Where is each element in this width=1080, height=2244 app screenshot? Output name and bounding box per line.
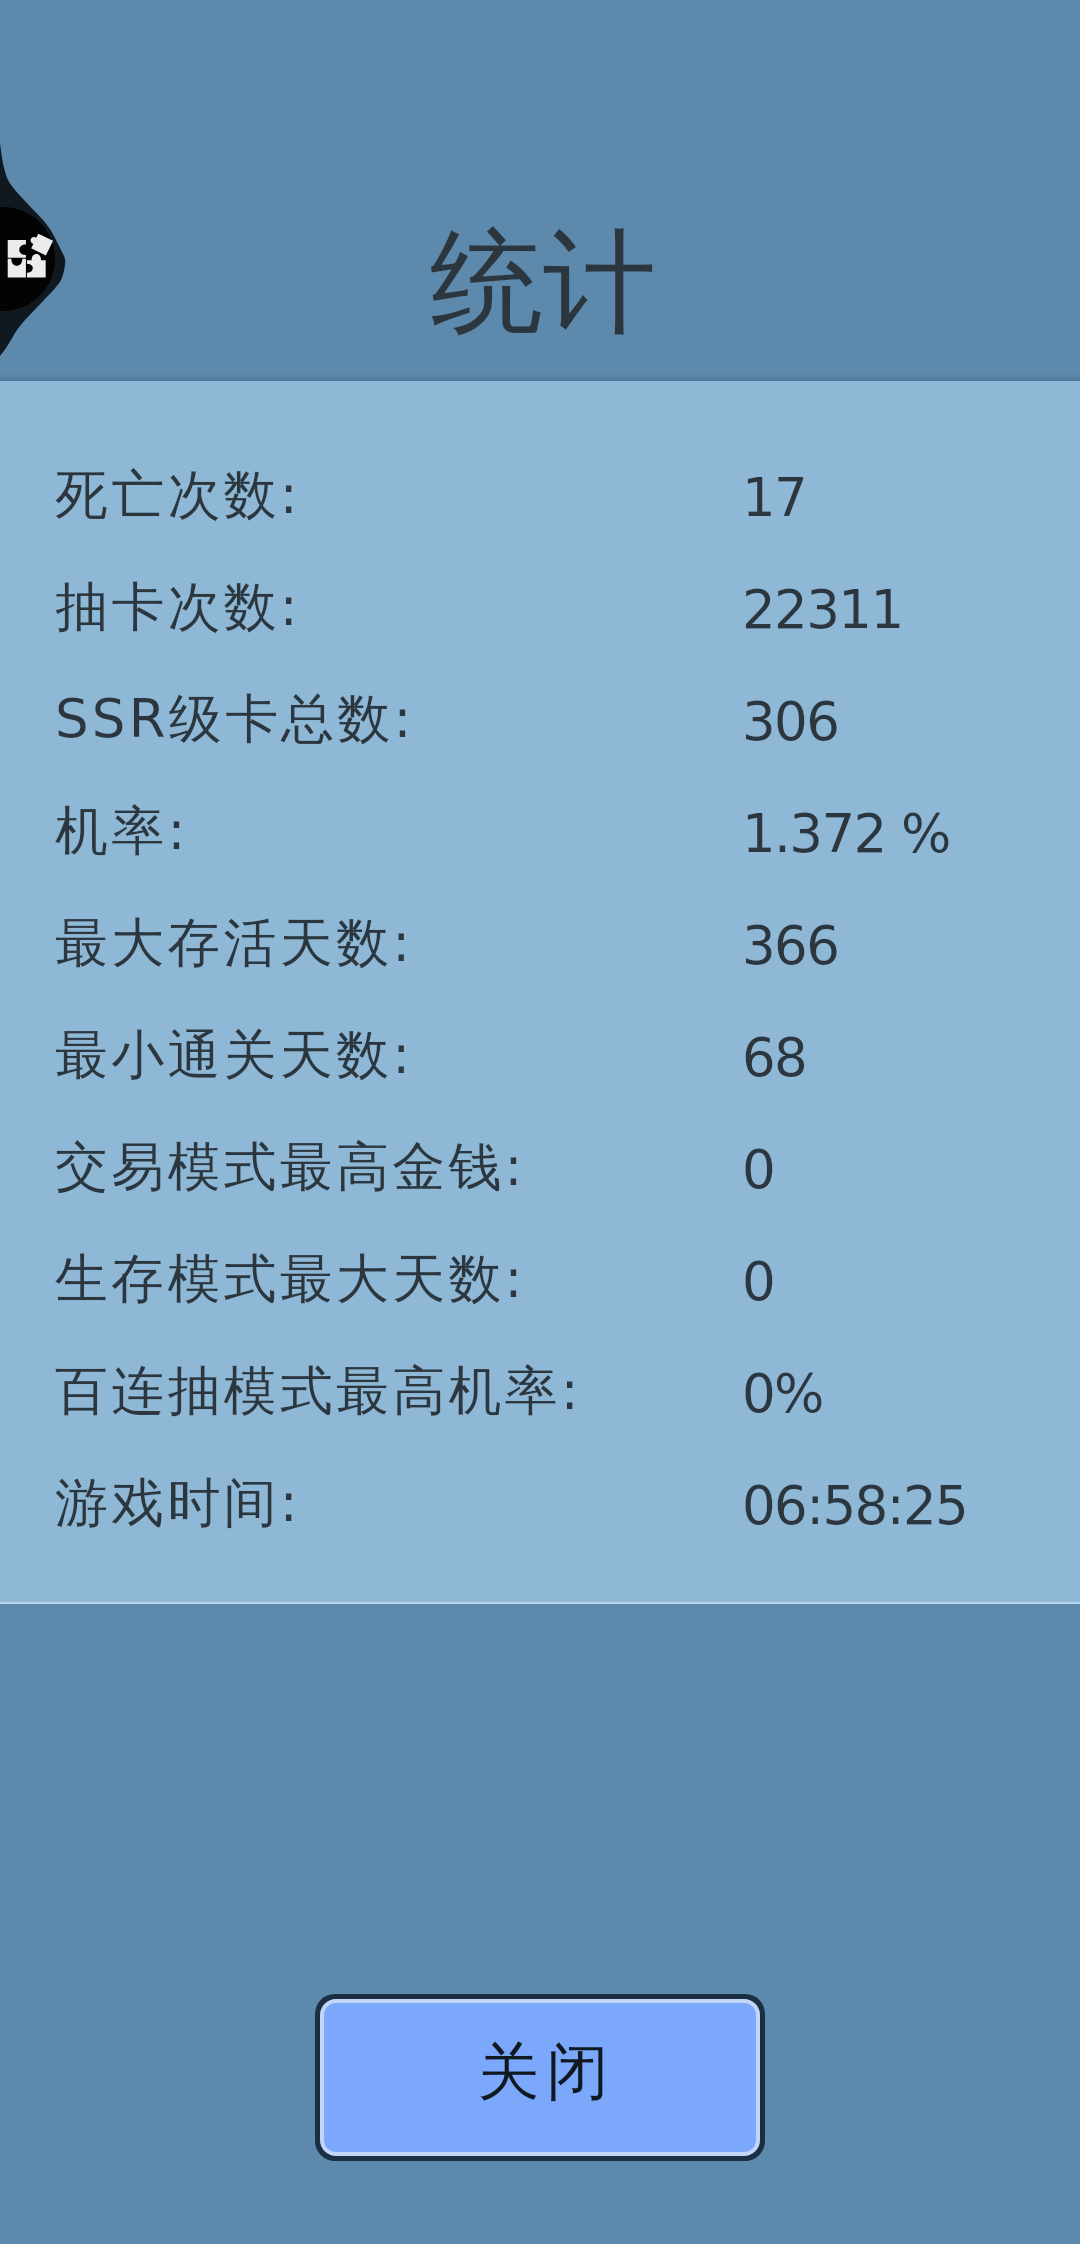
staticText: 游戏时间: — [55, 1470, 301, 1537]
staticText: 17 — [742, 467, 807, 529]
staticText: 0 — [742, 1139, 775, 1201]
button[interactable]: 关闭 — [324, 2003, 756, 2152]
staticText: 0% — [742, 1363, 823, 1425]
staticText: SSR级卡总数: — [55, 686, 415, 753]
staticText: 死亡次数: — [55, 462, 301, 529]
staticText: 306 — [742, 691, 839, 753]
staticText: 抽卡次数: — [55, 574, 301, 641]
staticText: 1.372 % — [742, 803, 950, 865]
staticText: 关闭 — [474, 2033, 612, 2111]
staticText: 生存模式最大天数: — [55, 1246, 526, 1313]
staticText: 最大存活天数: — [55, 910, 414, 977]
staticText: 机率: — [55, 798, 189, 865]
staticText: 统计 — [3, 212, 1080, 354]
staticText: 0 — [742, 1251, 775, 1313]
staticText: 06:58:25 — [742, 1475, 968, 1537]
staticText: 68 — [742, 1027, 807, 1089]
staticText: 最小通关天数: — [55, 1022, 414, 1089]
button[interactable]: Plugin menu — [0, 130, 72, 370]
staticText: 百连抽模式最高机率: — [55, 1358, 582, 1425]
staticText: 22311 — [742, 579, 903, 641]
staticText: 366 — [742, 915, 839, 977]
staticText: 交易模式最高金钱: — [55, 1134, 526, 1201]
